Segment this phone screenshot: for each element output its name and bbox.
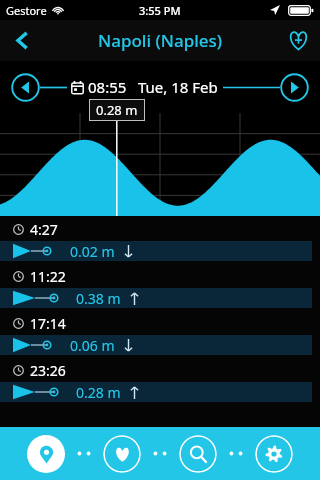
button[interactable]: Add to favorites (276, 20, 320, 61)
staticText: Gestore (6, 3, 47, 18)
staticText: 0.28 m (96, 101, 138, 119)
button[interactable]: 17:14 (0, 314, 320, 361)
staticText: Tue, 18 Feb (138, 77, 218, 97)
staticText: 23:26 (30, 361, 66, 380)
staticText: 0.06 m (70, 336, 115, 355)
staticText: 0.38 m (76, 289, 121, 308)
button[interactable]: Next day (280, 73, 309, 102)
staticText: 3:55 PM (139, 3, 181, 18)
staticText: 08:55 (88, 77, 127, 97)
button[interactable]: 11:22 (0, 267, 320, 314)
button[interactable]: Previous day (11, 73, 40, 102)
staticText: 0.02 m (70, 242, 115, 261)
button[interactable]: 4:27 (0, 220, 320, 267)
button[interactable]: 23:26 (0, 361, 320, 408)
staticText: Napoli (Naples) (98, 29, 223, 52)
staticText: 4:27 (30, 220, 58, 239)
staticText: 0.28 m (76, 383, 121, 402)
button[interactable]: Back (0, 20, 44, 61)
button[interactable]: Settings (255, 435, 293, 473)
staticText: 11:22 (30, 267, 66, 286)
staticText: 17:14 (30, 314, 66, 333)
button[interactable]: Favorites (103, 435, 141, 473)
button[interactable]: Search (179, 435, 217, 473)
button[interactable]: Location (27, 435, 65, 473)
